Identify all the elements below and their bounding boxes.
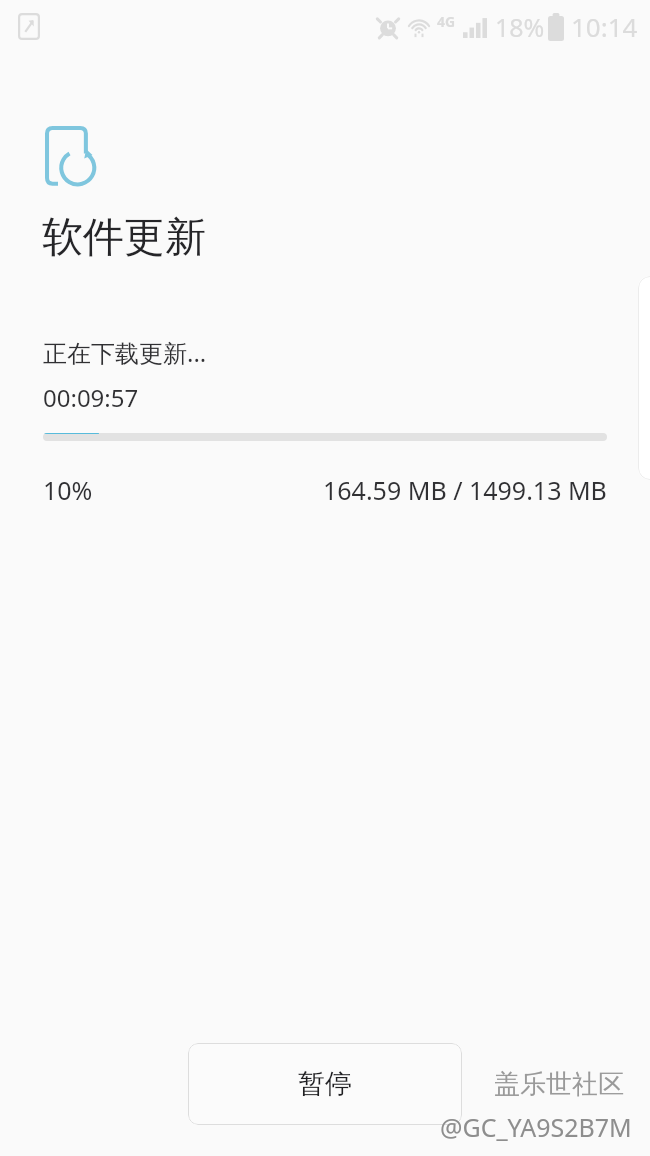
button[interactable]: 暂停 (188, 1043, 462, 1125)
staticText: 盖乐世社区 (494, 1068, 624, 1101)
staticText: 软件更新 (42, 212, 206, 264)
other: Smart View (18, 13, 40, 40)
staticText: 暂停 (298, 1067, 352, 1101)
staticText: 164.59 MB / 1499.13 MB (323, 473, 607, 507)
staticText: 10% (43, 473, 93, 507)
staticText: 4G (437, 12, 456, 31)
staticText: 正在下载更新... (43, 336, 207, 369)
staticText: 10:14 (571, 9, 638, 44)
staticText: 00:09:57 (43, 381, 139, 414)
staticText: 18% (495, 10, 545, 44)
staticText: @GC_YA9S2B7M (440, 1110, 632, 1144)
